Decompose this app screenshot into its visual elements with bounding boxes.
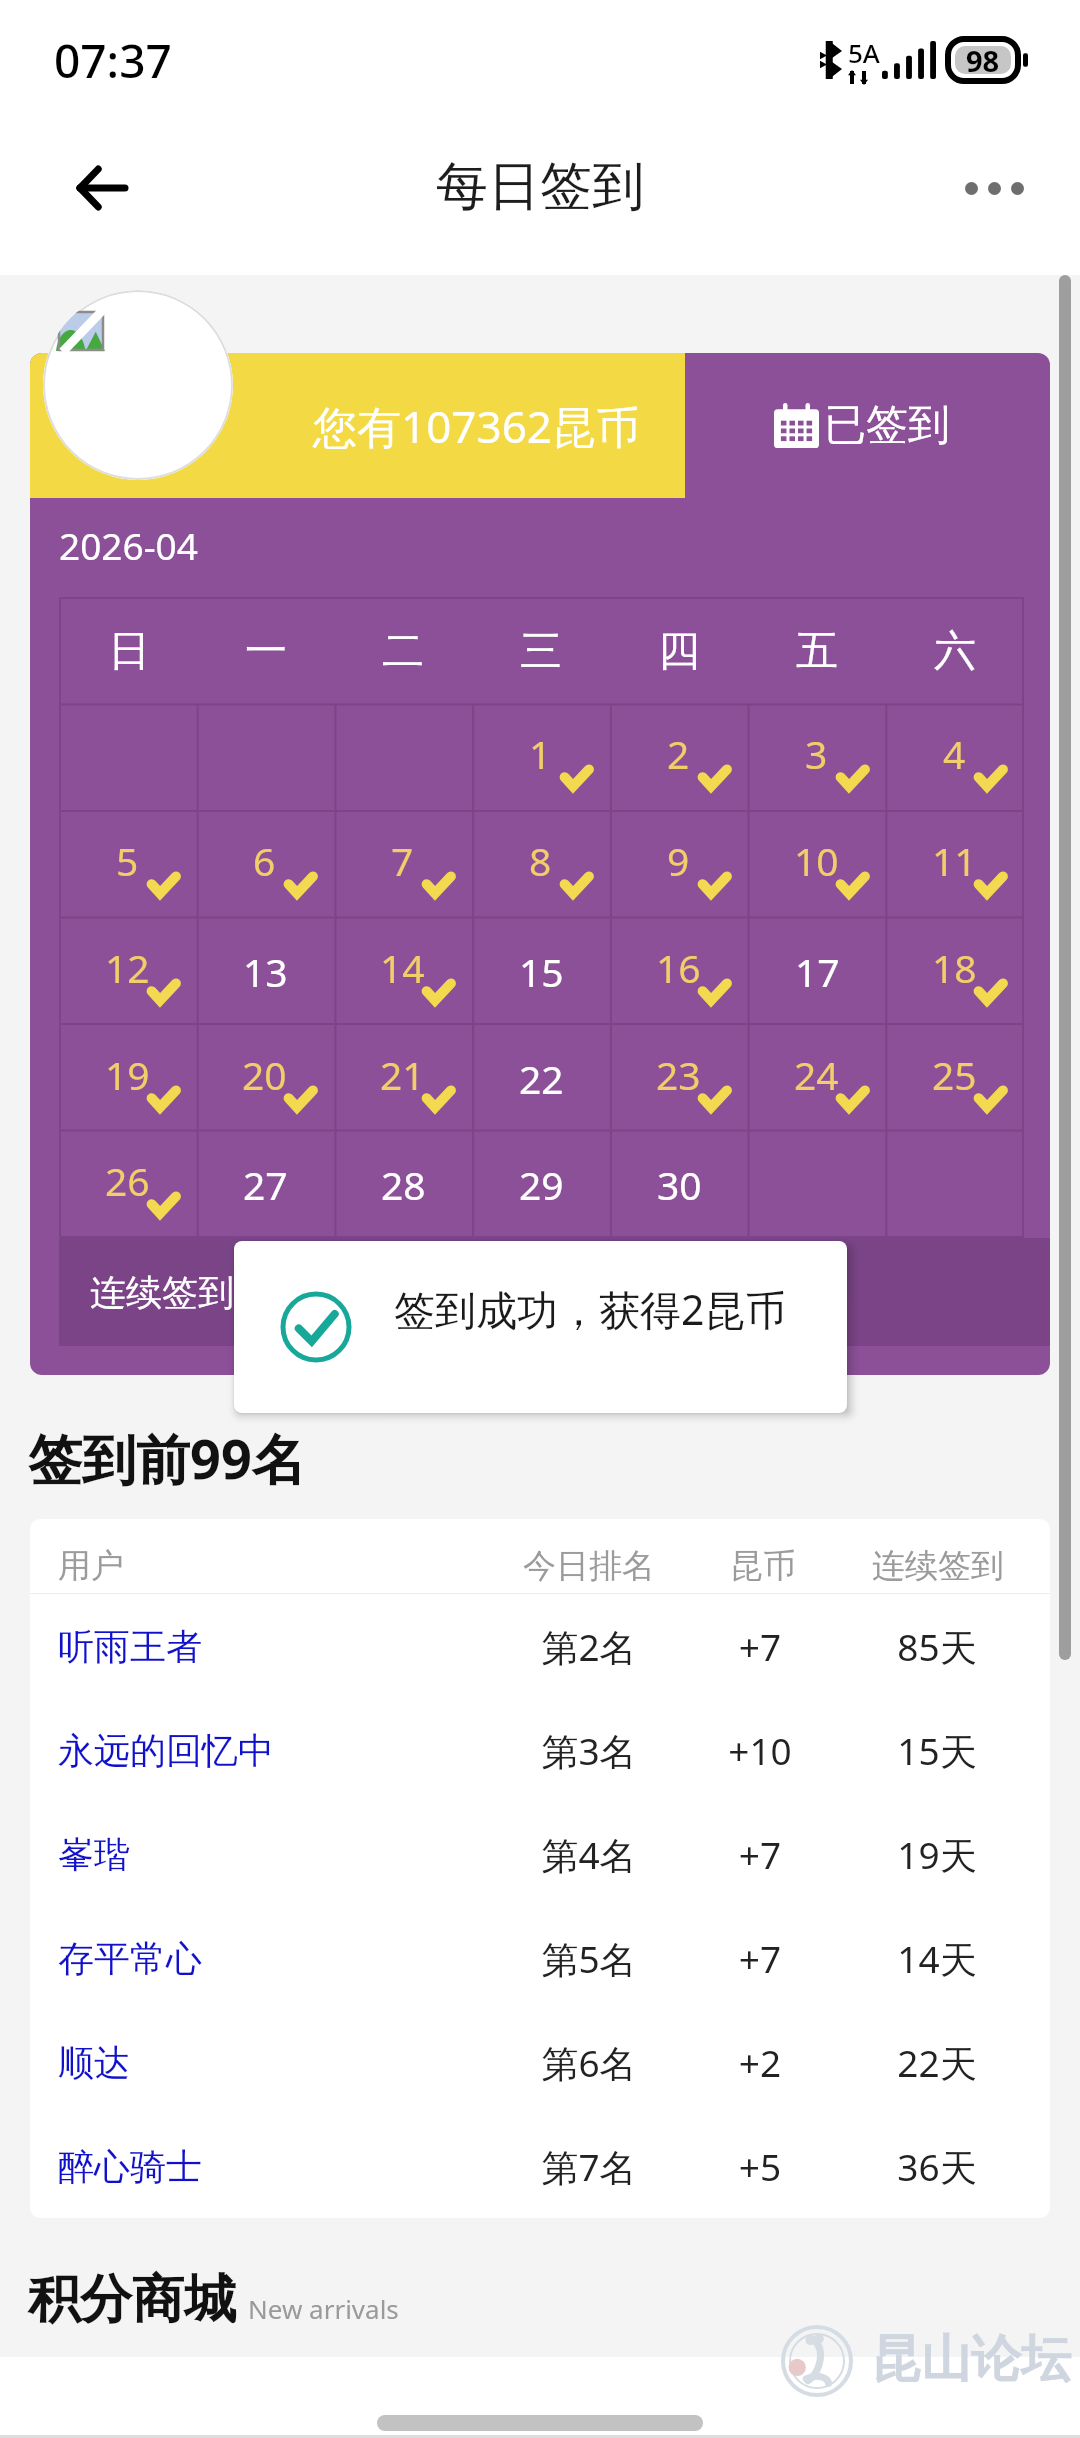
staticText: 第5名 (478, 1933, 700, 1984)
staticText: 29 (519, 1158, 564, 1211)
staticText: 签到前99名 (28, 1421, 306, 1495)
staticText: 用户 (58, 1545, 478, 1587)
staticText: 24 (794, 1048, 839, 1101)
button[interactable]: 已签到 (774, 399, 950, 452)
staticText: 每日签到 (436, 154, 644, 220)
staticText: 四 (658, 625, 700, 678)
staticText: 20 (242, 1048, 287, 1101)
button[interactable]: 永远的回忆中 (30, 1698, 1050, 1802)
staticText: 85天 (832, 1621, 1042, 1672)
staticText: 3 (805, 727, 828, 780)
staticText: 已签到 (824, 399, 950, 452)
staticText: 峯瑎 (58, 1832, 478, 1877)
staticText: 98 (966, 41, 1000, 80)
staticText: 30 (657, 1158, 702, 1211)
staticText: 5 (116, 834, 139, 887)
staticText: 1 (529, 727, 552, 780)
button[interactable]: 顺达 (30, 2010, 1050, 2114)
staticText: 16 (656, 941, 701, 994)
staticText: 21 (380, 1048, 425, 1101)
staticText: 签到成功，获得2昆币 (394, 1281, 787, 1337)
staticText: 三 (520, 625, 562, 678)
staticText: 今日排名 (478, 1545, 700, 1587)
staticText: 10 (794, 834, 839, 887)
staticText: 2026-04 (59, 520, 198, 570)
staticText: 27 (243, 1158, 288, 1211)
staticText: 5A (848, 35, 880, 70)
button[interactable]: 听雨王者 (30, 1594, 1050, 1698)
button[interactable]: More options (948, 142, 1040, 234)
staticText: 2 (667, 727, 690, 780)
staticText: New arrivals (248, 2291, 399, 2326)
staticText: 您有107362昆币 (313, 396, 641, 456)
staticText: 存平常心 (58, 1936, 478, 1981)
staticText: 13 (243, 945, 288, 998)
staticText: +7 (690, 1933, 830, 1983)
staticText: 28 (381, 1158, 426, 1211)
staticText: 15天 (832, 1725, 1042, 1776)
staticText: 14 (380, 941, 425, 994)
button[interactable]: 醉心骑士 (30, 2114, 1050, 2218)
staticText: 22天 (832, 2037, 1042, 2088)
staticText: +10 (690, 1725, 830, 1775)
staticText: 连续签到 (833, 1545, 1043, 1587)
staticText: 第4名 (478, 1829, 700, 1880)
staticText: 4 (943, 727, 966, 780)
staticText: 9 (667, 834, 690, 887)
staticText: 22 (519, 1052, 564, 1105)
staticText: 7 (391, 834, 414, 887)
staticText: 11 (932, 834, 977, 887)
staticText: 8 (529, 834, 552, 887)
staticText: 12 (105, 941, 150, 994)
staticText: 第3名 (478, 1725, 700, 1776)
button[interactable]: User avatar (43, 290, 233, 480)
staticText: 17 (795, 945, 840, 998)
staticText: +2 (690, 2037, 830, 2087)
staticText: 14天 (832, 1933, 1042, 1984)
staticText: 26 (105, 1154, 150, 1207)
button[interactable]: 存平常心 (30, 1906, 1050, 2010)
staticText: 36天 (832, 2141, 1042, 2192)
staticText: 一 (245, 625, 287, 678)
staticText: 顺达 (58, 2040, 478, 2085)
staticText: 15 (519, 945, 564, 998)
staticText: 五 (796, 625, 838, 678)
staticText: 听雨王者 (58, 1624, 478, 1669)
staticText: 07:37 (54, 29, 172, 92)
staticText: +7 (690, 1621, 830, 1671)
staticText: 昆币 (693, 1545, 833, 1587)
staticText: 二 (382, 625, 424, 678)
staticText: 18 (932, 941, 977, 994)
staticText: 醉心骑士 (58, 2144, 478, 2189)
button[interactable]: Back (55, 142, 147, 234)
staticText: 第2名 (478, 1621, 700, 1672)
staticText: 19天 (832, 1829, 1042, 1880)
staticText: 六 (934, 625, 976, 678)
staticText: 第7名 (478, 2141, 700, 2192)
staticText: 6 (253, 834, 276, 887)
staticText: 23 (656, 1048, 701, 1101)
button[interactable]: 峯瑎 (30, 1802, 1050, 1906)
staticText: 连续签到 (90, 1270, 234, 1315)
staticText: 第6名 (478, 2037, 700, 2088)
staticText: 永远的回忆中 (58, 1728, 478, 1773)
staticText: 日 (108, 625, 150, 678)
staticText: +7 (690, 1829, 830, 1879)
staticText: +5 (690, 2141, 830, 2191)
staticText: 19 (105, 1048, 150, 1101)
staticText: 积分商城 (28, 2267, 236, 2333)
staticText: 25 (932, 1048, 977, 1101)
staticText: 昆山论坛 (871, 2328, 1071, 2391)
